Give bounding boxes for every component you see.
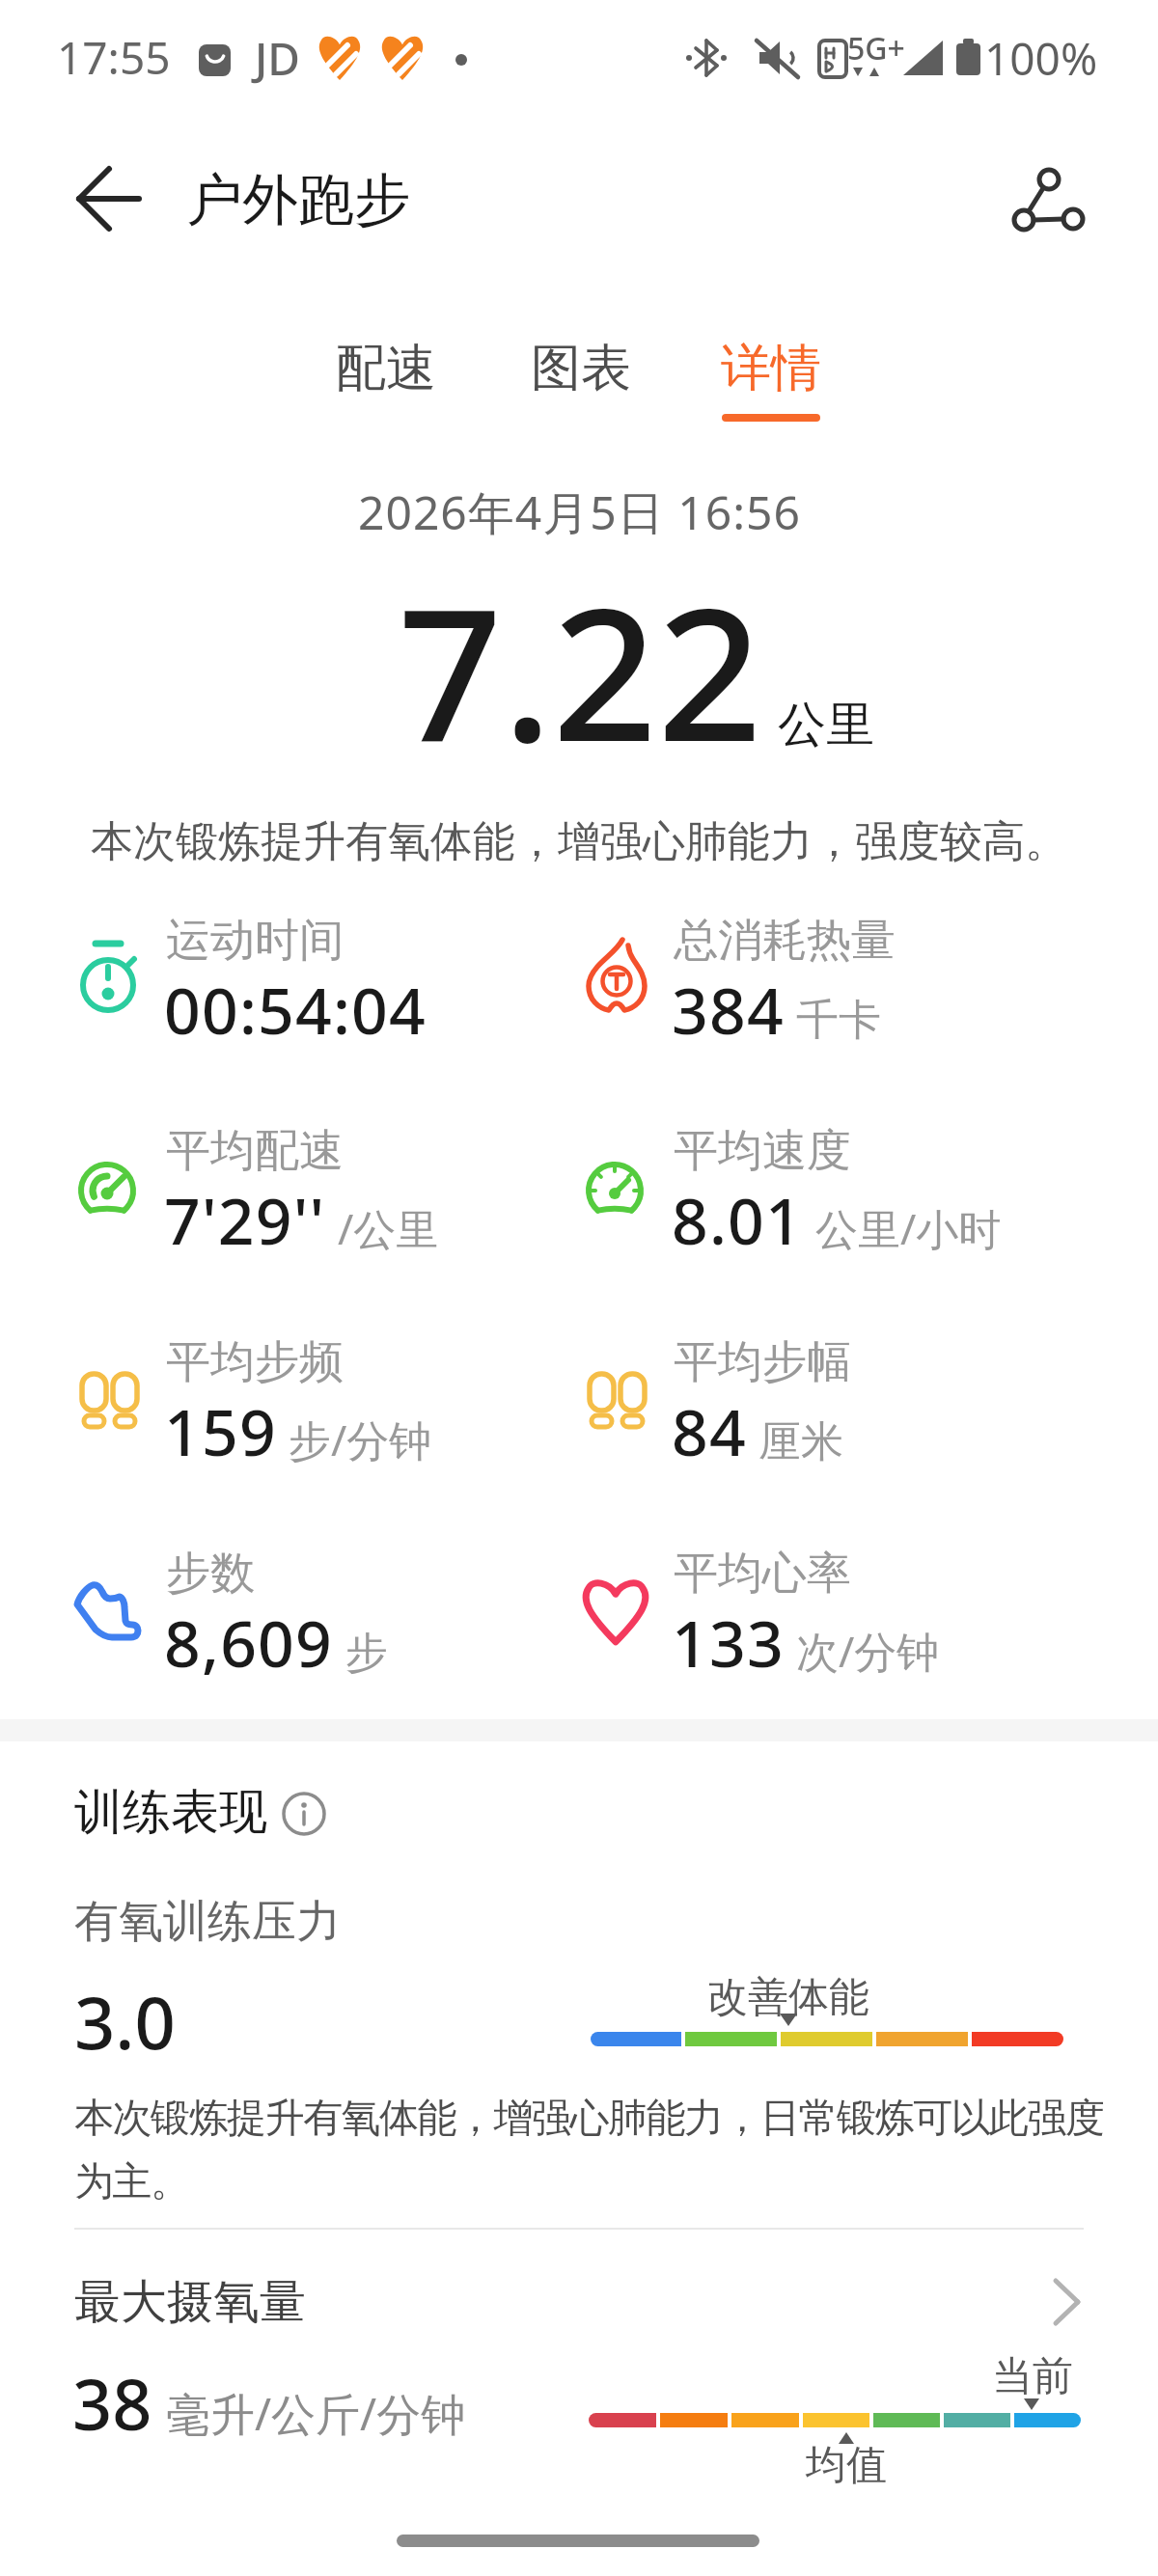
staticText: 8.01 [672,1176,804,1263]
staticText: 千卡 [796,994,881,1047]
staticText: 图表 [531,337,631,400]
staticText: 38 [72,2356,152,2451]
staticText: 133 [672,1599,785,1685]
staticText: 平均心率 [674,1546,851,1602]
staticText: 平均速度 [674,1123,851,1179]
staticText: JD [255,28,300,89]
staticText: 总消耗热量 [674,913,896,969]
staticText: 次/分钟 [796,1622,940,1680]
staticText: 5G+ [847,27,905,69]
staticText: 7'29'' [164,1176,326,1263]
button[interactable]: 配速 [280,318,492,419]
staticText: 配速 [336,337,436,400]
button[interactable]: 详情 [665,318,877,419]
staticText: /公里 [338,1199,439,1257]
staticText: 步数 [166,1546,255,1602]
staticText: 平均步频 [166,1334,344,1390]
staticText: 3.0 [74,1973,176,2070]
staticText: 公里 [778,695,874,755]
staticText: 8,609 [164,1599,334,1685]
staticText: 厘米 [758,1415,843,1468]
staticText: 改善体能 [707,1972,869,2023]
staticText: 7.22 [398,545,762,795]
staticText: 训练表现 [74,1782,267,1843]
staticText: 户外跑步 [186,165,410,235]
staticText: 17:55 [57,27,171,88]
staticText: 均值 [806,2440,887,2491]
staticText: 本次锻炼提升有氧体能，增强心肺能力，强度较高。 [91,815,1067,868]
staticText: 159 [164,1387,277,1474]
button[interactable]: 图表 [475,318,687,419]
staticText: 2026年4月5日 16:56 [358,480,801,544]
button[interactable] [278,1788,331,1841]
button[interactable] [999,154,1095,241]
staticText: 00:54:04 [164,966,427,1053]
staticText: 384 [672,966,785,1053]
staticText: 公里/小时 [815,1199,1002,1257]
staticText: 步 [345,1627,388,1680]
staticText: 有氧训练压力 [74,1894,341,1950]
staticText: 84 [672,1387,747,1474]
staticText: 本次锻炼提升有氧体能，增强心肺能力，日常锻炼可以此强度 为主。 [74,2094,1104,2206]
staticText: 详情 [721,337,821,400]
button[interactable] [58,2258,1100,2344]
staticText: 毫升/公斤/分钟 [166,2383,466,2444]
staticText: 平均步幅 [674,1334,851,1390]
staticText: 运动时间 [166,913,344,969]
staticText: 最大摄氧量 [74,2273,306,2331]
staticText: 当前 [992,2351,1073,2402]
button[interactable] [58,170,159,228]
staticText: 步/分钟 [289,1411,432,1468]
staticText: 平均配速 [166,1123,344,1179]
staticText: 100% [984,28,1098,89]
